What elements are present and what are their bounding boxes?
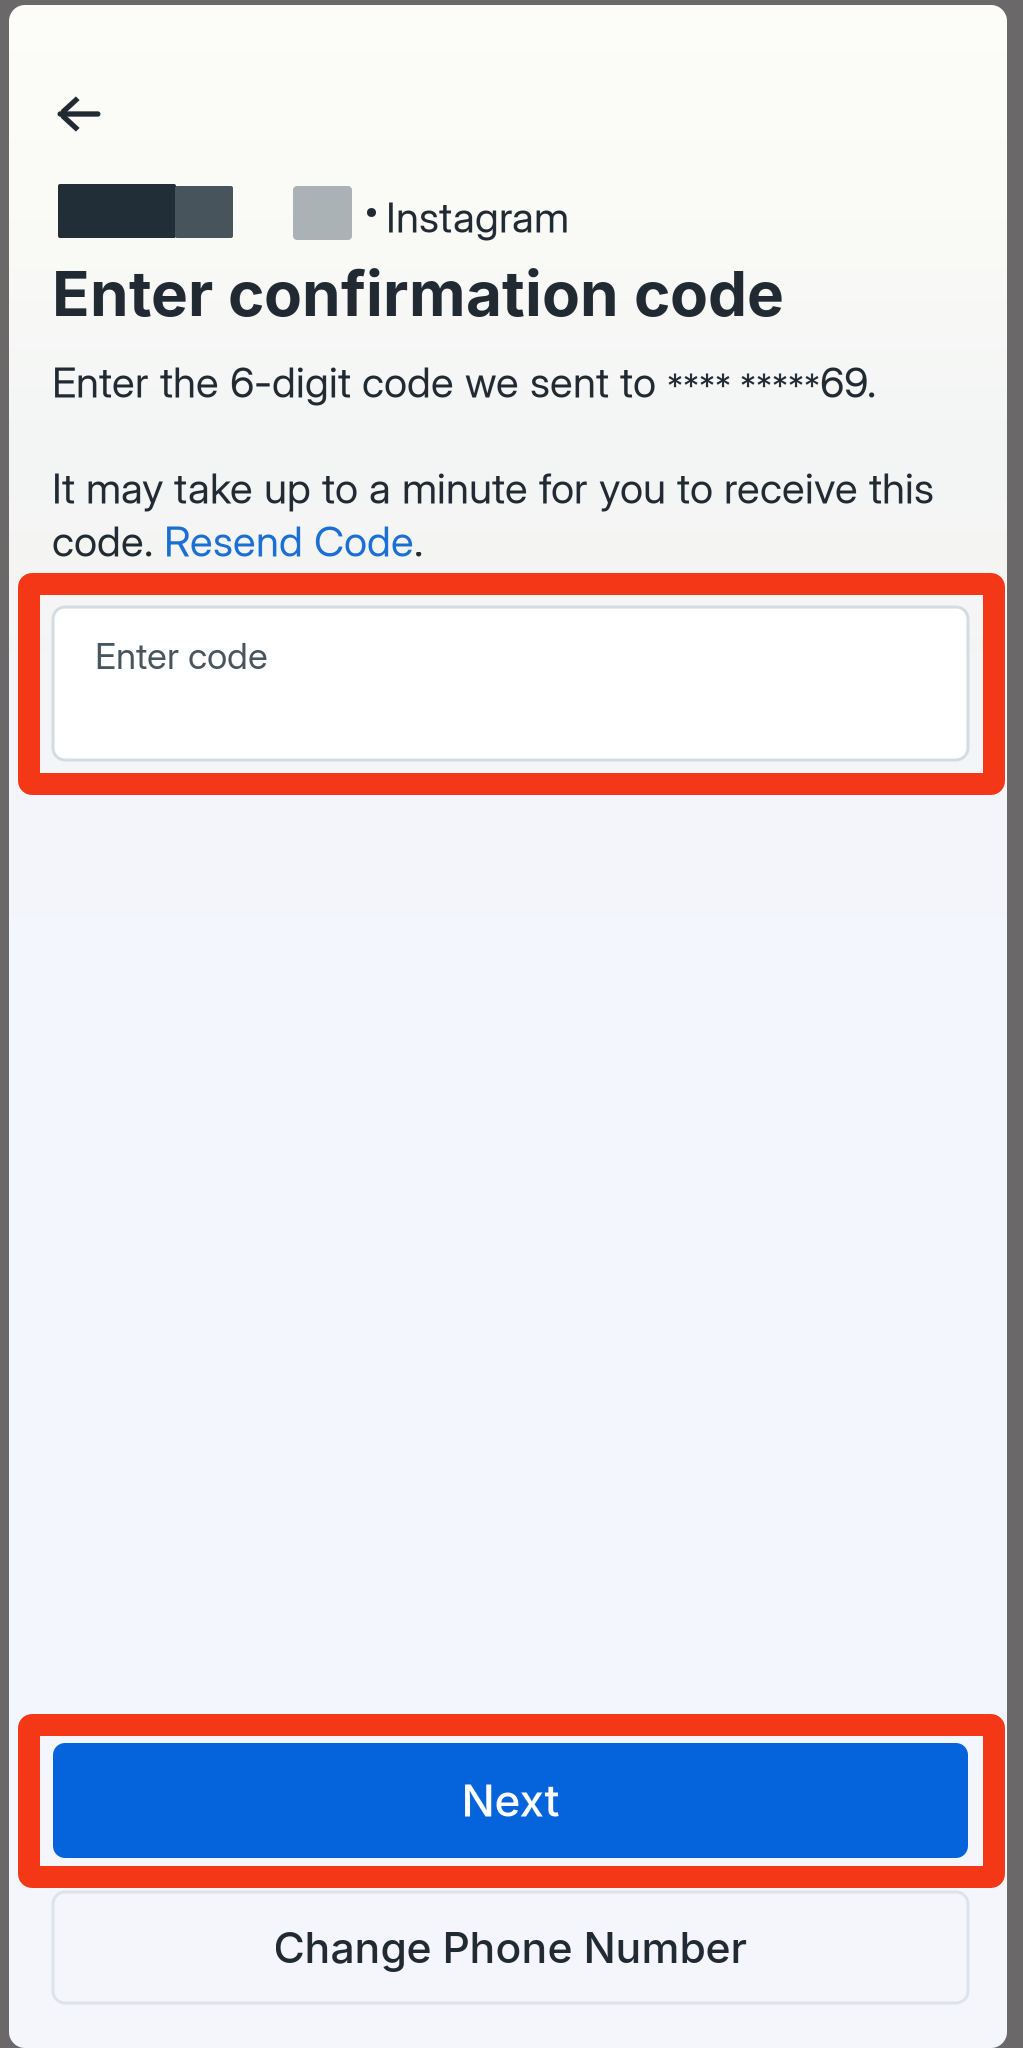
- staticText: Next: [461, 1774, 559, 1827]
- staticText: Enter the 6-digit code we sent to: [52, 357, 667, 408]
- staticText: 69.: [820, 357, 876, 408]
- button[interactable]: Change Phone Number: [53, 1892, 968, 2003]
- staticText: Enter code: [95, 634, 268, 678]
- button[interactable]: Enter code: [53, 607, 968, 760]
- button[interactable]: Resend Code: [164, 516, 414, 567]
- staticText: **** *****: [667, 365, 820, 406]
- button[interactable]: Next: [53, 1743, 968, 1858]
- staticText: code.: [52, 516, 164, 567]
- staticText: Enter confirmation code: [52, 256, 784, 331]
- staticText: Change Phone Number: [273, 1922, 747, 1973]
- button[interactable]: Back: [44, 83, 116, 145]
- staticText: Resend Code: [164, 516, 414, 567]
- staticText: Instagram: [386, 192, 569, 243]
- staticText: It may take up to a minute for you to re…: [52, 463, 934, 514]
- staticText: .: [414, 516, 423, 567]
